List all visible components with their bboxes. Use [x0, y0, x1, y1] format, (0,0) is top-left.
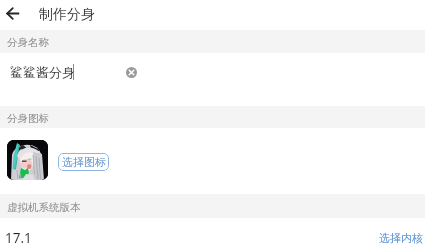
staticText: 17.1: [5, 229, 32, 247]
staticText: 制作分身: [39, 6, 95, 24]
staticText: 分身图标: [7, 112, 49, 125]
staticText: 选择内核: [379, 231, 423, 245]
staticText: 分身名称: [7, 36, 49, 49]
button[interactable]: Clear text: [121, 62, 142, 83]
staticText: 鲨鲨酱分身: [10, 64, 75, 80]
button[interactable]: Clone name field: [0, 53, 425, 106]
button[interactable]: 选择图标: [58, 153, 109, 171]
button[interactable]: 17.1: [0, 218, 425, 249]
button[interactable]: Back: [0, 0, 24, 27]
button[interactable]: Clone icon: [7, 140, 48, 180]
staticText: 虚拟机系统版本: [7, 201, 81, 214]
staticText: 选择图标: [62, 155, 106, 169]
